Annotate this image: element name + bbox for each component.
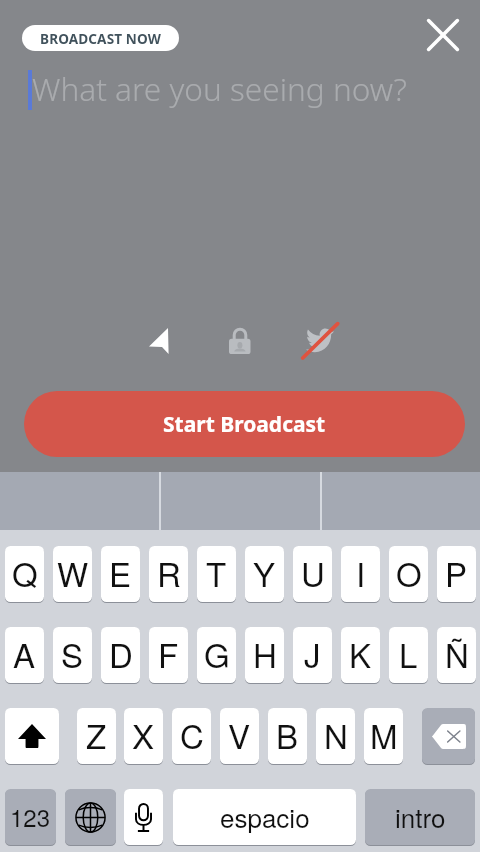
button[interactable]: Numbers <box>5 789 56 845</box>
button[interactable]: K <box>341 627 380 683</box>
button[interactable]: L <box>389 627 428 683</box>
button[interactable]: BROADCAST NOW <box>22 25 179 51</box>
button[interactable]: F <box>149 627 188 683</box>
staticText: Y <box>253 549 276 596</box>
staticText: K <box>349 630 372 677</box>
button[interactable]: Start Broadcast <box>24 391 465 457</box>
button[interactable]: Shift <box>5 708 59 764</box>
button[interactable]: Z <box>77 708 116 764</box>
staticText: F <box>158 630 179 677</box>
button[interactable]: espacio <box>173 789 356 845</box>
button[interactable]: J <box>293 627 332 683</box>
button[interactable]: B <box>268 708 307 764</box>
staticText: espacio <box>220 798 310 835</box>
button[interactable]: U <box>293 546 332 602</box>
staticText: E <box>109 549 132 596</box>
button[interactable]: Y <box>245 546 284 602</box>
button[interactable]: I <box>341 546 380 602</box>
button[interactable]: H <box>245 627 284 683</box>
button[interactable]: R <box>149 546 188 602</box>
staticText: P <box>445 549 468 596</box>
button[interactable]: X <box>124 708 163 764</box>
button[interactable]: Ñ <box>437 627 476 683</box>
button[interactable]: W <box>53 546 92 602</box>
staticText: A <box>13 630 36 677</box>
button[interactable]: Share on Twitter disabled <box>300 319 342 361</box>
button[interactable]: Location <box>146 325 178 357</box>
staticText: Start Broadcast <box>163 410 326 439</box>
button[interactable]: S <box>53 627 92 683</box>
button[interactable]: P <box>437 546 476 602</box>
button[interactable]: Q <box>5 546 44 602</box>
button[interactable]: T <box>197 546 236 602</box>
button[interactable]: intro <box>365 789 475 845</box>
staticText: X <box>132 711 155 758</box>
staticText: G <box>204 630 230 677</box>
staticText: S <box>61 630 84 677</box>
button[interactable]: O <box>389 546 428 602</box>
button[interactable]: Private <box>226 325 254 353</box>
staticText: L <box>399 630 418 677</box>
button[interactable]: C <box>172 708 211 764</box>
staticText: M <box>370 711 398 758</box>
button[interactable]: A <box>5 627 44 683</box>
staticText: U <box>301 549 325 596</box>
staticText: 123 <box>10 799 51 833</box>
staticText: W <box>57 549 89 596</box>
staticText: R <box>157 549 181 596</box>
staticText: N <box>324 711 348 758</box>
button[interactable]: Close <box>419 11 467 59</box>
staticText: intro <box>395 798 446 835</box>
staticText: H <box>253 630 277 677</box>
button[interactable]: Backspace <box>422 708 475 764</box>
staticText: Q <box>12 549 38 596</box>
staticText: Ñ <box>445 630 469 677</box>
staticText: O <box>396 549 422 596</box>
staticText: BROADCAST NOW <box>40 29 161 48</box>
staticText: D <box>109 630 133 677</box>
button[interactable]: E <box>101 546 140 602</box>
staticText: V <box>228 711 251 758</box>
button[interactable]: Switch keyboard <box>65 789 116 845</box>
button[interactable]: G <box>197 627 236 683</box>
button[interactable]: D <box>101 627 140 683</box>
staticText: C <box>180 711 204 758</box>
button[interactable]: M <box>364 708 403 764</box>
staticText: Z <box>86 711 107 758</box>
button[interactable]: Dictate <box>124 789 163 845</box>
button[interactable]: V <box>220 708 259 764</box>
staticText: J <box>304 630 321 677</box>
staticText: T <box>206 549 227 596</box>
staticText: I <box>356 549 366 596</box>
button[interactable]: N <box>316 708 355 764</box>
staticText: B <box>276 711 299 758</box>
staticText: What are you seeing now? <box>32 67 407 110</box>
